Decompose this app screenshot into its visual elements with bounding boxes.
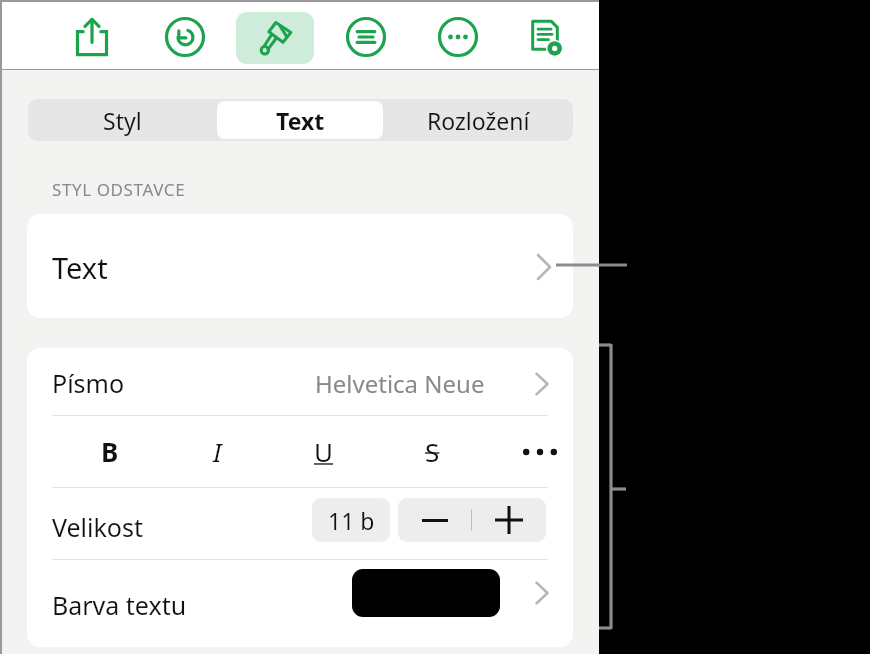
button[interactable]: Text [27, 214, 573, 318]
button[interactable]: Undo [159, 11, 211, 63]
button[interactable]: B [83, 416, 137, 487]
button[interactable]: Text [217, 99, 383, 141]
staticText: B [101, 434, 119, 469]
staticText: Rozložení [427, 105, 530, 136]
button[interactable]: Document options [519, 11, 571, 63]
staticText: Text [52, 248, 108, 287]
staticText: Barva textu [52, 588, 187, 622]
staticText: S [425, 434, 440, 469]
staticText: Velikost [52, 510, 143, 544]
staticText: Text [276, 105, 325, 136]
button[interactable]: U [297, 416, 351, 487]
button[interactable]: More options [432, 11, 484, 63]
staticText: 11 b [328, 505, 375, 536]
button[interactable]: Format brush [249, 11, 301, 63]
staticText: STYL ODSTAVCE [52, 178, 186, 201]
button[interactable]: Increase size [472, 498, 546, 542]
staticText: Helvetica Neue [315, 367, 485, 400]
button[interactable]: Share [66, 11, 118, 63]
button[interactable]: Rozložení [383, 99, 573, 141]
button[interactable]: Barva textu [27, 560, 573, 647]
button[interactable]: Paragraph format [340, 11, 392, 63]
button[interactable]: Písmo [27, 348, 573, 415]
button[interactable]: I [190, 416, 244, 487]
button[interactable]: 11 b [312, 498, 390, 542]
button[interactable]: More text options [513, 416, 567, 487]
staticText: U [314, 434, 334, 469]
button[interactable]: S [405, 416, 459, 487]
staticText: Písmo [52, 366, 125, 400]
button[interactable]: Decrease size [398, 498, 472, 542]
button[interactable]: Styl [28, 99, 217, 141]
staticText: I [213, 434, 222, 469]
staticText: Styl [103, 105, 142, 136]
